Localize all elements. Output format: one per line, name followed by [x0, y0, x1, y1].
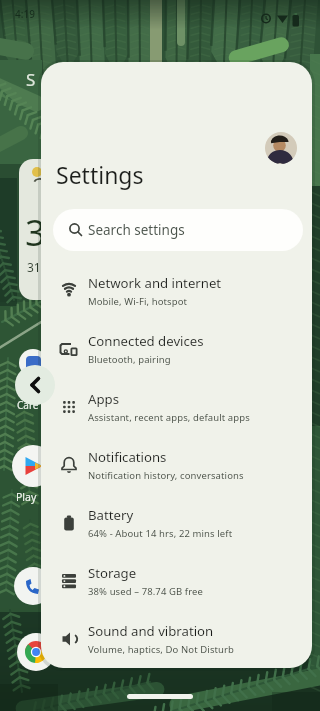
staticText: Care — [17, 398, 39, 412]
staticText: Assistant, recent apps, default apps — [88, 411, 250, 424]
staticText: Connected devices — [88, 332, 204, 350]
staticText: 3 — [25, 208, 46, 257]
button[interactable]: Search settings — [53, 209, 303, 251]
staticText: Volume, haptics, Do Not Disturb — [88, 643, 235, 656]
staticText: S — [26, 68, 36, 91]
staticText: Network and internet — [88, 274, 222, 292]
button[interactable]: Battery — [41, 494, 312, 552]
staticText: Bluetooth, pairing — [88, 353, 171, 366]
button[interactable]: Network and internet — [41, 262, 312, 320]
staticText: Notification history, conversations — [88, 469, 244, 482]
button[interactable]: Storage — [41, 552, 312, 610]
button[interactable]: Connected devices — [41, 320, 312, 378]
button[interactable]: 3 — [19, 159, 64, 300]
staticText: 38% used – 78.74 GB free — [88, 585, 203, 598]
staticText: 64% - About 14 hrs, 22 mins left — [88, 527, 233, 540]
button[interactable] — [17, 633, 55, 671]
staticText: Storage — [88, 564, 137, 582]
staticText: Notifications — [88, 448, 167, 466]
staticText: 4:19 — [15, 7, 35, 21]
staticText: Search settings — [88, 221, 185, 239]
button[interactable] — [12, 445, 54, 487]
button[interactable] — [265, 132, 297, 164]
button[interactable] — [15, 365, 55, 405]
staticText: 31° — [27, 259, 46, 275]
staticText: Battery — [88, 506, 134, 524]
staticText: Play — [16, 490, 37, 504]
button[interactable]: Sound and vibration — [41, 610, 312, 668]
button[interactable] — [14, 567, 52, 605]
staticText: Mobile, Wi-Fi, hotspot — [88, 295, 188, 308]
button[interactable]: Apps — [41, 378, 312, 436]
staticText: Apps — [88, 390, 119, 408]
button[interactable]: Notifications — [41, 436, 312, 494]
staticText: Settings — [56, 159, 144, 190]
staticText: Sound and vibration — [88, 622, 214, 640]
button[interactable] — [19, 349, 47, 377]
